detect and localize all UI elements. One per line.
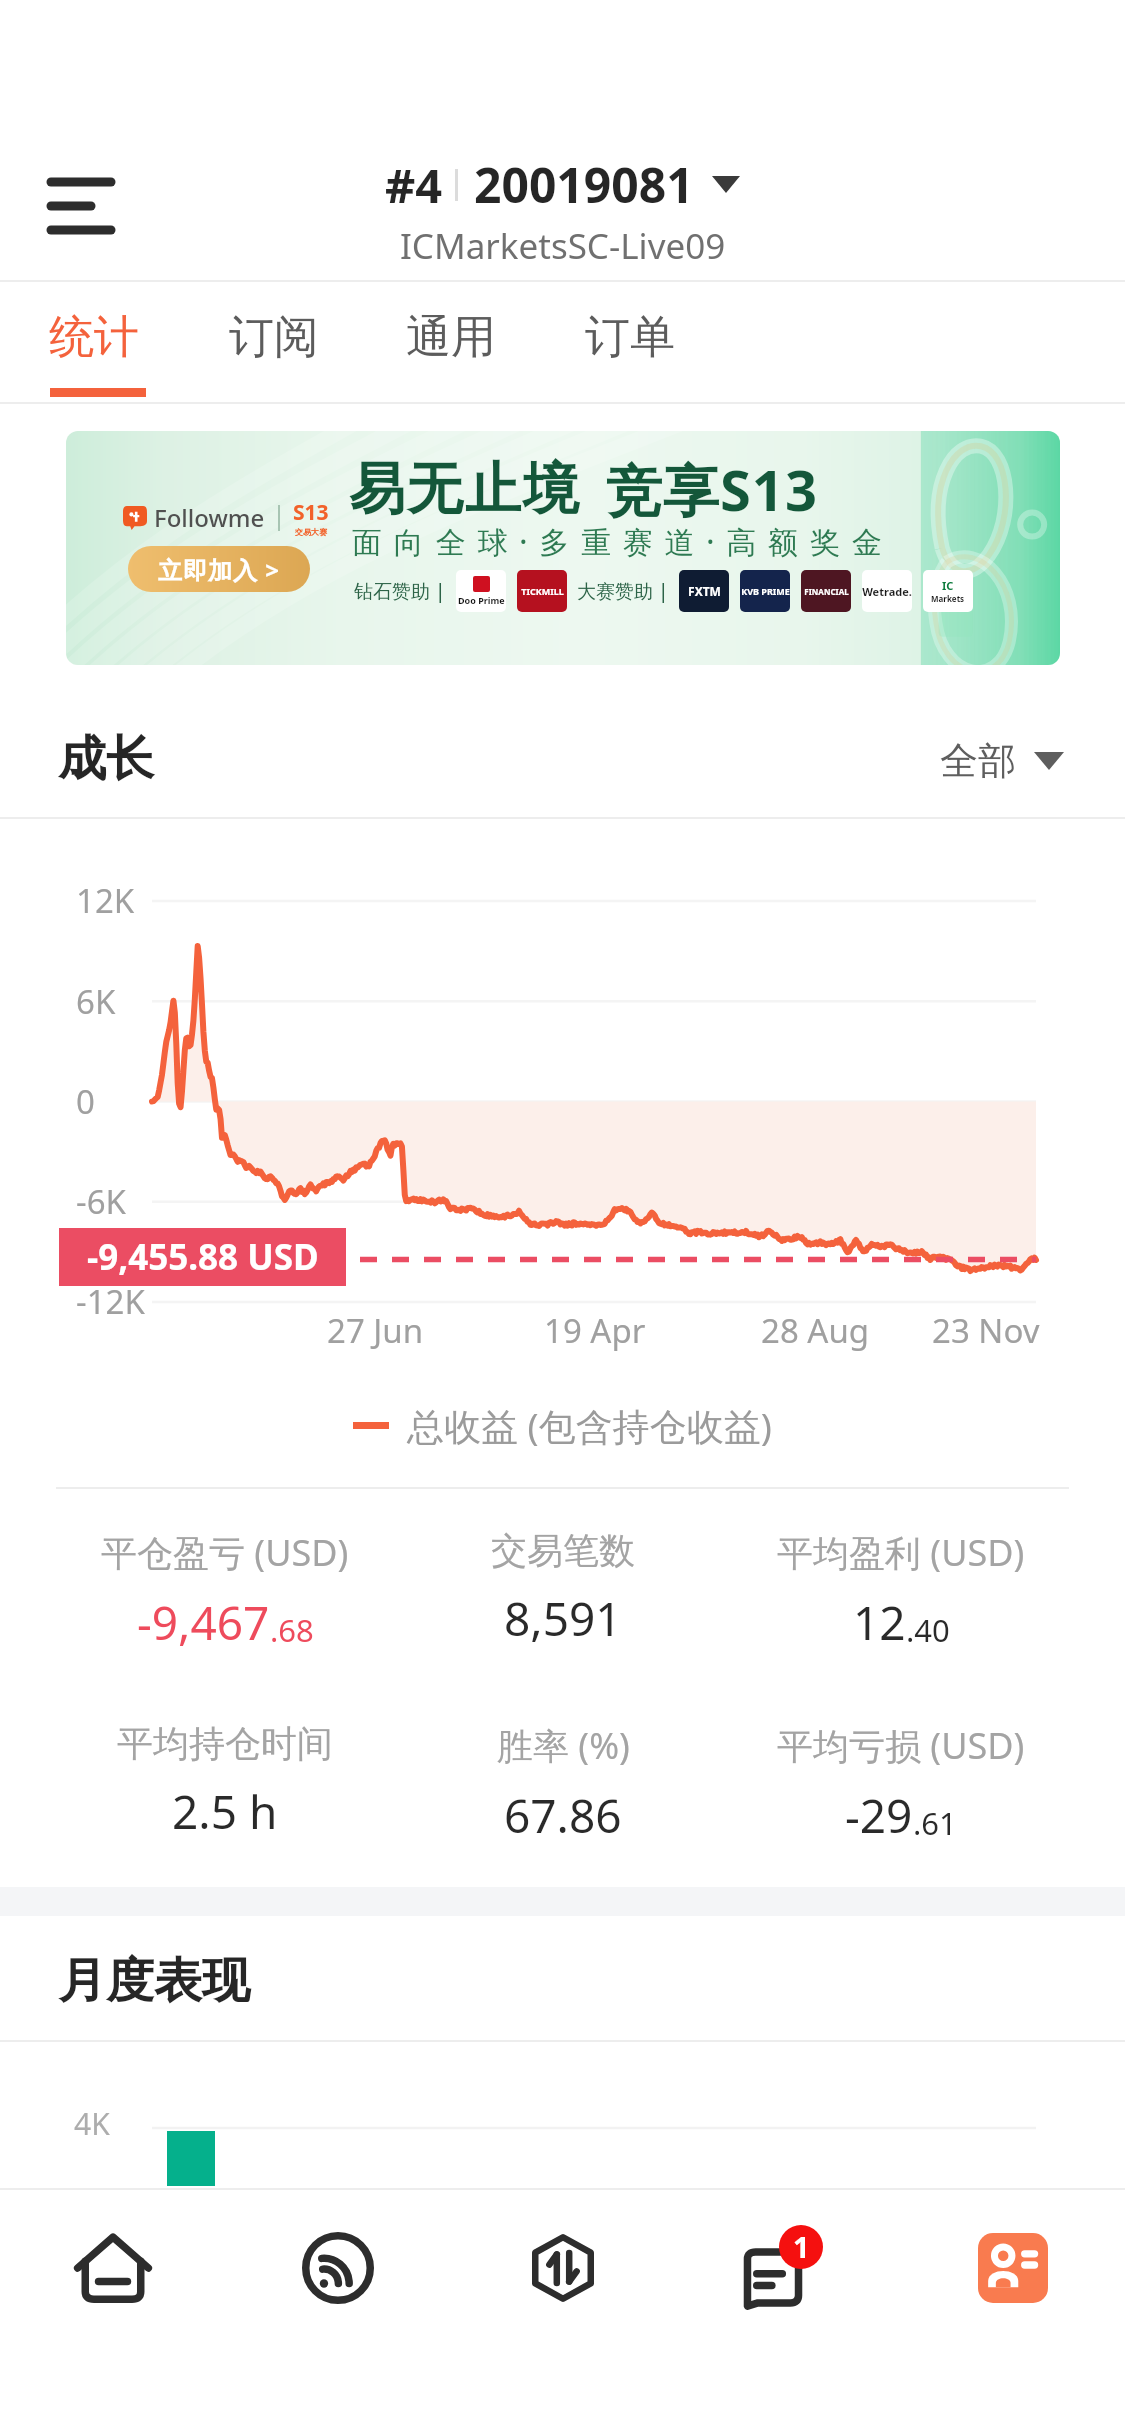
staticText: .40 <box>906 1609 950 1651</box>
staticText: FXTM <box>688 583 721 599</box>
button[interactable]: Switch account <box>360 150 765 260</box>
button[interactable]: Feed <box>225 2188 450 2348</box>
button[interactable]: Trade <box>450 2188 675 2348</box>
staticText: -6K <box>76 1179 126 1224</box>
staticText: Followme <box>154 501 265 534</box>
staticText: 大赛赞助 | <box>577 578 669 604</box>
staticText: 订阅 <box>229 309 319 366</box>
staticText: -12K <box>76 1279 145 1324</box>
staticText: 1 <box>793 2227 810 2266</box>
staticText: 平均盈利 (USD) <box>777 1528 1025 1577</box>
staticText: 钻石赞助 | <box>354 578 446 604</box>
button[interactable]: Menu <box>26 151 136 261</box>
staticText: 平仓盈亏 (USD) <box>101 1528 349 1577</box>
staticText: 立即加入 > <box>158 553 280 586</box>
staticText: .68 <box>270 1609 314 1651</box>
staticText: 面 向 全 球 · 多 重 赛 道 · 高 额 奖 金 <box>352 521 884 562</box>
staticText: S13 <box>293 498 329 527</box>
staticText: 平均持仓时间 <box>117 1721 333 1766</box>
staticText: 交易笔数 <box>491 1528 635 1573</box>
staticText: TICKMILL <box>521 585 564 597</box>
staticText: 27 Jun <box>327 1308 424 1353</box>
staticText: 月度表现 <box>58 1951 250 2011</box>
staticText: Wetrade. <box>862 584 912 599</box>
staticText: 28 Aug <box>761 1308 870 1353</box>
staticText: 总收益 (包含持仓收益) <box>407 1400 772 1451</box>
staticText: 成长 <box>58 729 154 789</box>
staticText: 2.5 h <box>172 1780 278 1843</box>
staticText: 统计 <box>49 309 139 366</box>
staticText: .61 <box>913 1802 957 1844</box>
button[interactable]: 统计 <box>20 282 168 402</box>
staticText: 20019081 <box>474 152 694 217</box>
staticText: Doo Prime <box>458 594 505 606</box>
staticText: -9,467 <box>137 1591 270 1654</box>
staticText: 交易大赛 <box>295 527 327 537</box>
button[interactable]: 通用 <box>377 282 525 402</box>
button[interactable]: Followme S13 trading contest banner <box>66 431 1060 665</box>
staticText: 通用 <box>406 309 496 366</box>
staticText: KVB PRIME <box>741 585 790 597</box>
staticText: 19 Apr <box>544 1308 646 1353</box>
staticText: 12K <box>76 878 135 923</box>
staticText: 0 <box>76 1079 95 1124</box>
staticText: 竞享S13 <box>606 451 818 527</box>
staticText: 8,591 <box>504 1587 622 1650</box>
staticText: 67.86 <box>504 1784 622 1847</box>
staticText: ICMarketsSC-Live09 <box>400 222 726 270</box>
staticText: 4K <box>74 2103 110 2144</box>
staticText: -9,455.88 USD <box>87 1233 319 1281</box>
staticText: 12 <box>853 1591 906 1654</box>
staticText: 平均亏损 (USD) <box>777 1721 1025 1770</box>
staticText: 易无止境 <box>348 454 580 525</box>
button[interactable]: 立即加入 > <box>128 546 310 592</box>
staticText: 全部 <box>940 737 1016 785</box>
staticText: #4 <box>385 153 443 217</box>
staticText: 23 Nov <box>932 1308 1040 1353</box>
button[interactable]: 订阅 <box>200 282 348 402</box>
staticText: 胜率 (%) <box>497 1721 630 1770</box>
staticText: FINANCIAL <box>804 586 849 597</box>
staticText: IC <box>942 578 954 593</box>
staticText: 订单 <box>585 309 675 366</box>
staticText: -29 <box>845 1784 913 1847</box>
button[interactable]: Messages <box>675 2188 900 2348</box>
button[interactable]: Profile <box>900 2188 1125 2348</box>
button[interactable]: Home <box>0 2188 225 2348</box>
staticText: 6K <box>76 979 116 1024</box>
button[interactable]: 订单 <box>556 282 704 402</box>
button[interactable]: 全部 <box>940 737 1064 785</box>
staticText: Markets <box>931 593 965 604</box>
